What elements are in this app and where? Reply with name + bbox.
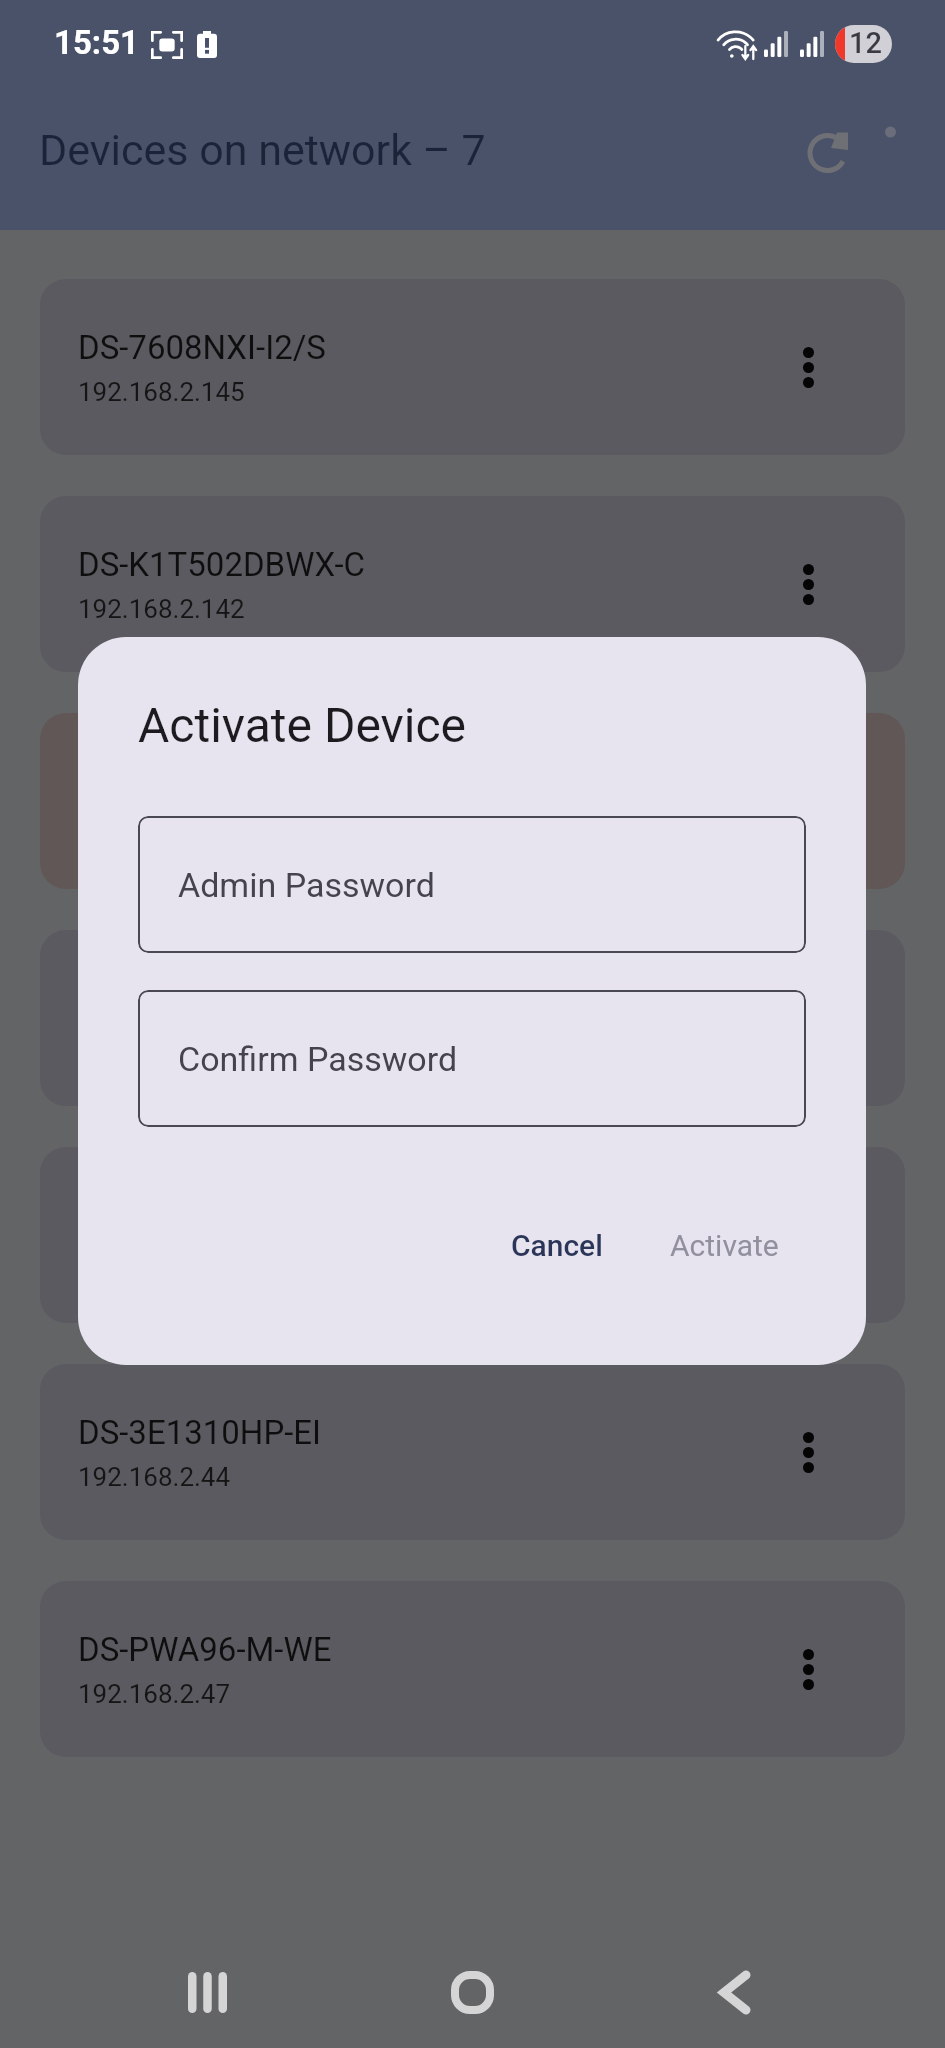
staticText: 192.168.2.44 (78, 1462, 231, 1492)
button[interactable]: Device options (772, 1633, 844, 1705)
staticText: DS-3E1310HP-EI (78, 1413, 322, 1452)
button[interactable]: Home (424, 1944, 520, 2040)
staticText: 15:51 (54, 23, 140, 62)
button[interactable]: DS-7608NXI-I2/S (40, 279, 905, 455)
button[interactable]: DS-3E1310HP-EI (40, 1364, 905, 1540)
button[interactable]: DS-2CD2086G2-I (40, 930, 905, 1106)
staticText: DS-K1T502DBWX-C (78, 545, 365, 584)
button[interactable]: Admin Password (138, 816, 806, 953)
staticText: Cancel (511, 1228, 603, 1263)
button[interactable]: Device options (772, 1199, 844, 1271)
staticText: Admin Password (178, 865, 435, 905)
button[interactable]: Device options (772, 1416, 844, 1488)
staticText: 192.168.2.145 (78, 377, 245, 407)
staticText: 12 (849, 26, 882, 60)
button[interactable]: Cancel (493, 1216, 621, 1275)
button[interactable]: Confirm Password (138, 990, 806, 1127)
button[interactable]: More options (845, 86, 937, 178)
button[interactable]: Refresh (784, 107, 876, 199)
button[interactable]: Device options (772, 765, 844, 837)
staticText: DS-PWA96-M-WE (78, 1630, 332, 1669)
staticText: Confirm Password (178, 1039, 458, 1079)
button[interactable]: DS-7A08N-K1 (40, 1147, 905, 1323)
staticText: 192.168.2.47 (78, 1679, 231, 1709)
button[interactable]: Device options (772, 982, 844, 1054)
button[interactable]: DS-2CD2T47G2-L (40, 713, 905, 889)
staticText: DS-2CD2086G2-I (78, 979, 324, 1018)
button[interactable]: DS-PWA96-M-WE (40, 1581, 905, 1757)
button[interactable]: Recents (159, 1944, 255, 2040)
staticText: 192.168.2.108 (78, 1028, 245, 1058)
button[interactable]: Back (687, 1944, 783, 2040)
staticText: Devices on network – 7 (39, 125, 486, 175)
button[interactable]: Device options (772, 331, 844, 403)
button[interactable]: Activate (652, 1216, 797, 1275)
button[interactable]: DS-K1T502DBWX-C (40, 496, 905, 672)
staticText: DS-7608NXI-I2/S (78, 328, 326, 367)
staticText: Activate Device (138, 697, 467, 753)
staticText: 192.168.2.64 (78, 811, 231, 841)
button[interactable]: Device options (772, 548, 844, 620)
staticText: 192.168.2.142 (78, 594, 245, 624)
staticText: Activate (670, 1228, 779, 1263)
